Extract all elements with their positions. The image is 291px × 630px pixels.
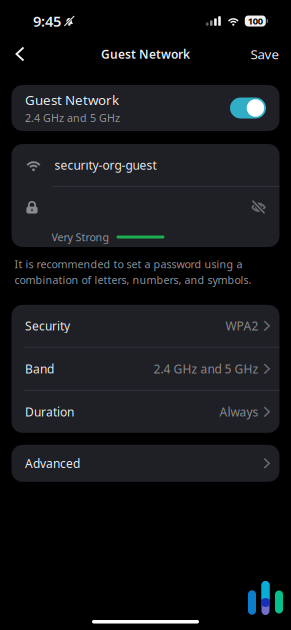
button[interactable]: Guest Network	[11, 85, 279, 131]
staticText: 2.4 GHz and 5 GHz	[153, 361, 258, 377]
button[interactable]: Band	[11, 348, 279, 390]
staticText: Security	[25, 318, 70, 334]
button[interactable]: Save	[250, 38, 279, 70]
staticText: Very Strong	[51, 230, 109, 244]
button[interactable]: Back	[5, 38, 35, 70]
staticText: Always	[219, 404, 258, 420]
staticText: 9:45	[33, 11, 61, 31]
staticText: It is recommended to set a password usin…	[14, 257, 251, 287]
staticText: 100	[248, 15, 263, 27]
staticText: Save	[250, 45, 279, 63]
staticText: Duration	[25, 404, 74, 420]
staticText: Band	[25, 361, 54, 377]
button[interactable]: Advanced	[11, 445, 279, 482]
button[interactable]: Security	[11, 305, 279, 347]
staticText: Guest Network	[25, 91, 119, 109]
staticText: Guest Network	[101, 46, 190, 62]
staticText: Advanced	[25, 455, 80, 471]
staticText: WPA2	[225, 318, 258, 334]
staticText: security-org-guest	[54, 157, 156, 173]
staticText: 2.4 GHz and 5 GHz	[25, 111, 120, 125]
button[interactable]: Duration	[11, 391, 279, 433]
